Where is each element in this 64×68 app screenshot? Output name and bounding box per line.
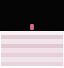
- button[interactable]: Radio: [0, 57, 64, 62]
- button[interactable]: Podcasts: [0, 53, 64, 57]
- button[interactable]: Top charts: [0, 44, 64, 48]
- button[interactable]: Your library: [0, 48, 64, 53]
- button[interactable]: Browse all: [0, 62, 64, 66]
- button[interactable]: Made for you: [0, 35, 64, 39]
- button[interactable]: Featured artwork: [30, 24, 34, 30]
- button[interactable]: New releases: [0, 39, 64, 44]
